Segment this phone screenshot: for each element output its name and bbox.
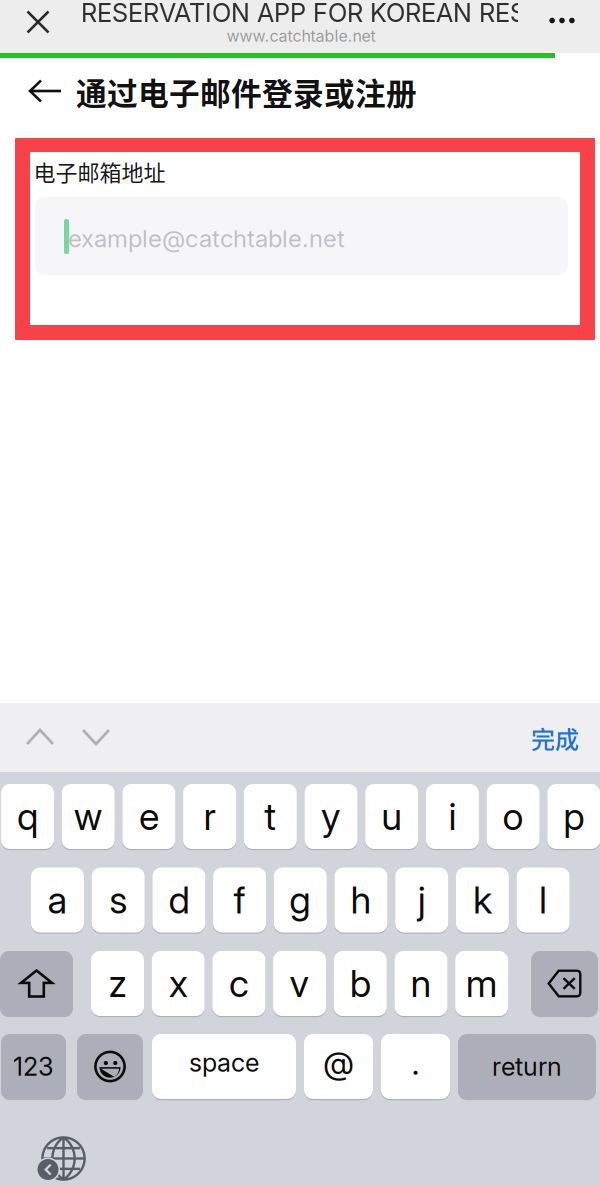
button[interactable]: Close: [6, 0, 70, 48]
staticText: v: [290, 961, 310, 1006]
button[interactable]: j: [395, 867, 448, 934]
button[interactable]: k: [456, 867, 509, 934]
button[interactable]: u: [365, 784, 418, 850]
button[interactable]: h: [334, 867, 387, 934]
button[interactable]: g: [274, 867, 327, 934]
button[interactable]: z: [91, 951, 144, 1017]
staticText: n: [410, 961, 431, 1006]
staticText: a: [47, 877, 67, 923]
staticText: @: [323, 1044, 354, 1082]
staticText: c: [229, 961, 249, 1006]
staticText: b: [350, 961, 371, 1006]
button[interactable]: More options: [533, 0, 591, 47]
button[interactable]: n: [394, 951, 447, 1017]
staticText: RESERVATION APP FOR KOREAN RES: [81, 0, 526, 28]
staticText: m: [466, 961, 498, 1006]
button[interactable]: x: [152, 951, 205, 1017]
staticText: space: [189, 1047, 259, 1078]
staticText: e: [139, 794, 159, 839]
staticText: 完成: [531, 721, 579, 755]
button[interactable]: a: [31, 867, 84, 934]
button[interactable]: space: [152, 1034, 296, 1100]
button[interactable]: Shift: [0, 951, 73, 1017]
button[interactable]: m: [455, 951, 508, 1017]
button[interactable]: w: [62, 784, 115, 850]
staticText: i: [448, 794, 456, 839]
button[interactable]: t: [244, 784, 297, 850]
staticText: z: [108, 961, 126, 1006]
button[interactable]: r: [183, 784, 236, 850]
button[interactable]: q: [1, 784, 54, 850]
button[interactable]: 123: [1, 1034, 66, 1100]
staticText: s: [109, 877, 127, 923]
staticText: d: [168, 877, 189, 923]
button[interactable]: l: [517, 867, 570, 934]
button[interactable]: v: [273, 951, 326, 1017]
button[interactable]: Previous field: [17, 714, 63, 760]
staticText: example@catchtable.net: [68, 224, 345, 253]
button[interactable]: Switch keyboard: [41, 1136, 86, 1181]
button[interactable]: return: [458, 1034, 596, 1100]
button[interactable]: b: [334, 951, 387, 1017]
button[interactable]: Next field: [73, 714, 119, 760]
staticText: o: [503, 794, 524, 839]
button[interactable]: Emoji: [77, 1034, 143, 1100]
button[interactable]: e: [122, 784, 175, 850]
staticText: 通过电子邮件登录或注册: [76, 69, 417, 114]
staticText: p: [563, 794, 584, 839]
staticText: y: [321, 794, 341, 839]
button[interactable]: o: [487, 784, 540, 850]
button[interactable]: y: [304, 784, 357, 850]
staticText: www.catchtable.net: [226, 26, 375, 46]
staticText: x: [169, 961, 188, 1006]
button[interactable]: p: [547, 784, 600, 850]
button[interactable]: d: [152, 867, 205, 934]
staticText: g: [289, 877, 311, 923]
button[interactable]: At sign: [304, 1034, 373, 1100]
staticText: k: [473, 877, 492, 923]
staticText: return: [492, 1051, 562, 1082]
staticText: q: [17, 794, 38, 839]
button[interactable]: i: [426, 784, 479, 850]
staticText: h: [350, 877, 371, 923]
staticText: 电子邮箱地址: [33, 155, 165, 187]
staticText: r: [204, 794, 216, 839]
staticText: t: [264, 794, 276, 839]
staticText: l: [539, 877, 547, 923]
button[interactable]: 完成: [516, 712, 594, 764]
button[interactable]: f: [213, 867, 266, 934]
staticText: u: [381, 794, 402, 839]
button[interactable]: s: [92, 867, 145, 934]
staticText: f: [234, 877, 246, 923]
staticText: 123: [13, 1051, 54, 1082]
button[interactable]: Delete: [531, 951, 598, 1017]
staticText: .: [411, 1044, 419, 1082]
staticText: w: [74, 794, 103, 839]
staticText: j: [418, 877, 426, 923]
button[interactable]: c: [212, 951, 265, 1017]
button[interactable]: Back: [21, 67, 69, 115]
button[interactable]: Period: [381, 1034, 450, 1100]
